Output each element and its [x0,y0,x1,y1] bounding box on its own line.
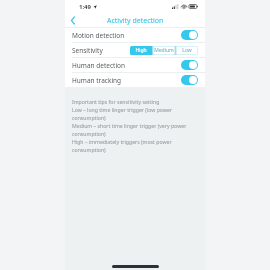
button[interactable]: High [130,46,152,55]
staticText: Important tips for sensitivity setting [72,98,160,105]
button[interactable]: On [181,75,198,85]
staticText: Low – long time linger trigger (low powe… [72,106,173,113]
staticText: Sensitivity [72,46,103,55]
button[interactable]: Human detection [65,58,205,72]
staticText: Medium – short time linger trigger (very… [72,122,187,129]
button[interactable]: On [181,30,198,40]
staticText: Human tracking [72,76,122,85]
staticText: Activity detection [107,16,164,26]
staticText: consumption) [72,130,106,137]
button[interactable]: On [181,60,198,70]
button[interactable]: Back [65,13,81,28]
staticText: Human detection [72,61,126,70]
button[interactable]: Low [176,46,198,55]
staticText: High – immediately triggers (most power [72,138,172,145]
button[interactable]: Human tracking [65,73,205,87]
staticText: Low [182,47,192,54]
staticText: 1:49 [79,3,91,11]
staticText: Motion detection [72,31,125,40]
staticText: consumption) [72,146,106,153]
staticText: High [135,47,147,54]
staticText: Medium [154,47,174,54]
staticText: consumption) [72,114,106,121]
button[interactable]: Motion detection [65,28,205,42]
button[interactable]: Medium [153,46,175,55]
